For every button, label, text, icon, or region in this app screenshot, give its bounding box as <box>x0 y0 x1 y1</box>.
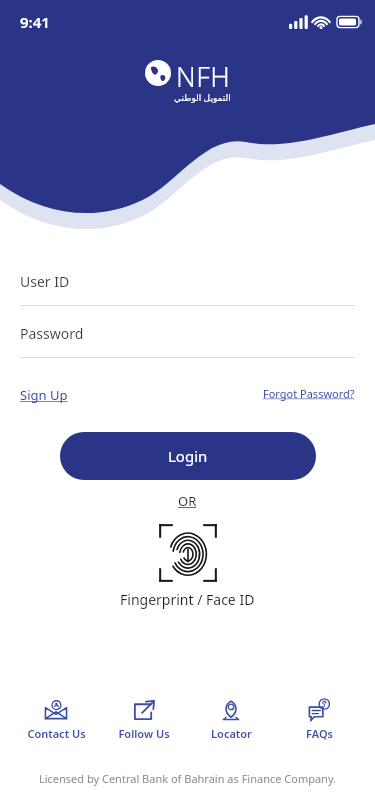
button[interactable]: Sign Up <box>20 386 68 404</box>
staticText: Password <box>20 324 84 343</box>
button[interactable]: Follow Us <box>102 696 186 743</box>
staticText: Locator <box>211 726 252 741</box>
staticText: Contact Us <box>27 726 86 741</box>
button[interactable]: FAQs <box>277 696 361 743</box>
button[interactable]: Password <box>0 324 375 358</box>
staticText: Login <box>168 446 208 466</box>
button[interactable]: Forgot Password? <box>263 386 355 401</box>
staticText: 9:41 <box>20 12 50 32</box>
button[interactable]: User ID <box>0 272 375 306</box>
staticText: التمويل الوطني <box>174 91 231 103</box>
button[interactable]: Login <box>60 432 316 480</box>
button[interactable]: Fingerprint or Face ID login <box>0 524 375 609</box>
button[interactable]: Contact Us <box>14 696 98 743</box>
staticText: User ID <box>20 272 70 291</box>
staticText: FAQs <box>306 726 333 741</box>
staticText: Follow Us <box>118 726 170 741</box>
staticText: Licensed by Central Bank of Bahrain as F… <box>0 771 375 786</box>
button[interactable]: Locator <box>189 696 273 743</box>
staticText: OR <box>178 492 197 510</box>
staticText: NFH <box>176 58 231 95</box>
staticText: Fingerprint / Face ID <box>120 590 255 609</box>
